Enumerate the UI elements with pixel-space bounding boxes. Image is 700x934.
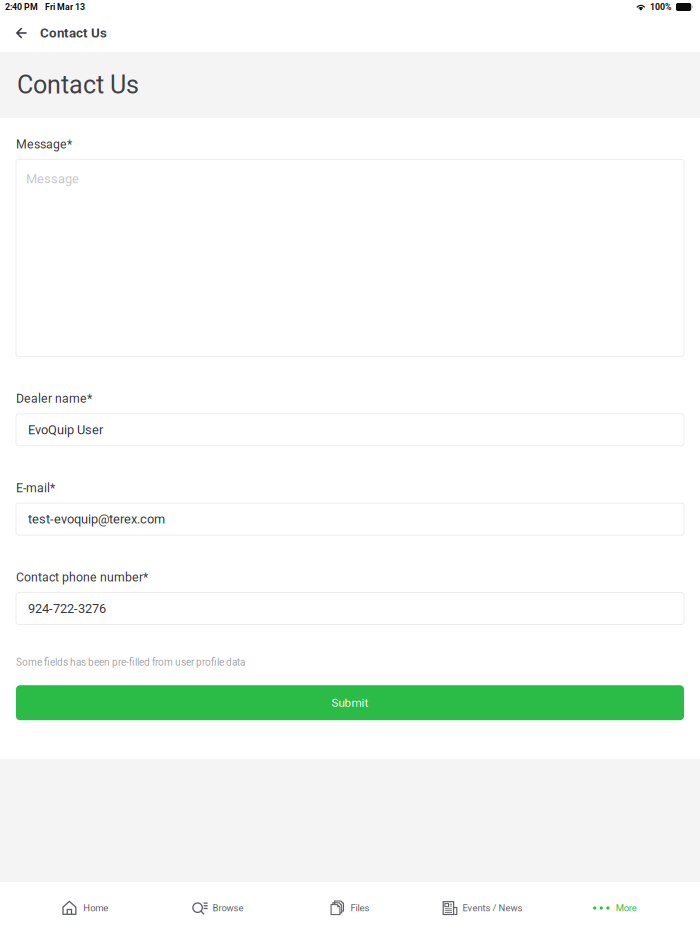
staticText: E-mail* [16, 481, 55, 495]
button[interactable]: Files [284, 882, 416, 934]
staticText: Browse [213, 902, 244, 914]
staticText: Events / News [462, 902, 522, 914]
button[interactable]: More [549, 882, 681, 934]
staticText: Files [350, 902, 369, 914]
staticText: 924-722-3276 [28, 601, 106, 616]
staticText: EvoQuip User [28, 422, 103, 437]
button[interactable]: Browse [151, 882, 284, 934]
staticText: Contact Us [40, 25, 107, 41]
staticText: Message [26, 171, 79, 186]
button[interactable]: Events / News [416, 882, 549, 934]
staticText: Contact Us [17, 70, 139, 100]
staticText: Message* [16, 137, 72, 151]
staticText: Contact phone number* [16, 570, 148, 584]
button[interactable]: Submit [16, 685, 684, 720]
staticText: 100% [650, 2, 672, 12]
staticText: Dealer name* [16, 391, 92, 406]
button[interactable]: Home [19, 882, 151, 934]
staticText: Submit [331, 696, 368, 710]
staticText: Home [83, 902, 108, 914]
staticText: Some fields has been pre-filled from use… [16, 656, 245, 668]
staticText: test-evoquip@terex.com [28, 512, 165, 527]
staticText: More [616, 902, 637, 914]
staticText: Fri Mar 13 [45, 2, 85, 12]
button[interactable]: Back [0, 14, 40, 52]
staticText: 2:40 PM [5, 2, 38, 12]
